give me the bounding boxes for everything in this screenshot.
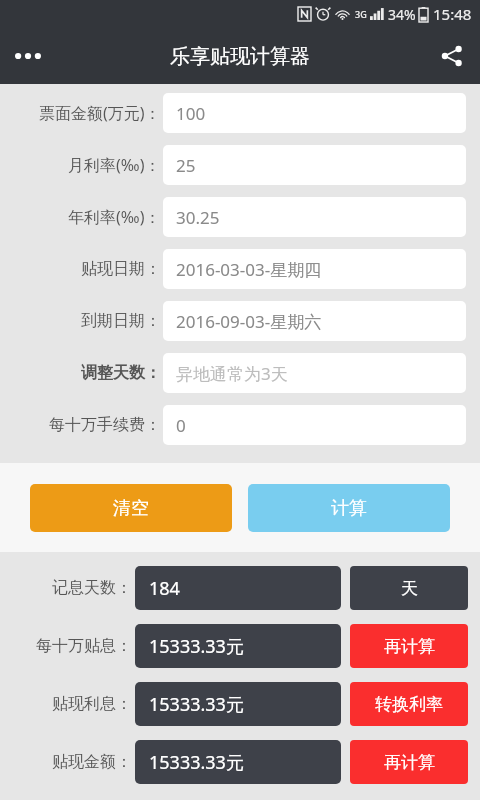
button[interactable]: 15333.33元 [135, 682, 341, 726]
staticText: 2016-09-03-星期六 [176, 310, 322, 333]
staticText: 每十万手续费： [49, 415, 161, 435]
staticText: 贴现利息： [52, 694, 132, 714]
staticText: 34% [388, 5, 416, 24]
staticText: 贴现日期： [81, 259, 161, 279]
button[interactable]: 再计算 [350, 624, 468, 668]
button[interactable]: 2016-03-03-星期四 [163, 249, 466, 289]
button[interactable]: 计算 [248, 484, 450, 532]
staticText: 再计算 [384, 636, 435, 657]
staticText: 15333.33元 [149, 750, 244, 775]
staticText: 贴现金额： [52, 752, 132, 772]
staticText: 再计算 [384, 752, 435, 773]
button[interactable]: 184 [135, 566, 341, 610]
button[interactable]: Share [424, 28, 480, 84]
button[interactable]: More options [0, 28, 56, 84]
staticText: 年利率(‰)： [68, 206, 161, 228]
staticText: 15333.33元 [149, 692, 244, 717]
staticText: 清空 [113, 497, 149, 520]
button[interactable]: 0 [163, 405, 466, 445]
button[interactable]: 转换利率 [350, 682, 468, 726]
staticText: 票面金额(万元)： [39, 102, 161, 124]
staticText: 2016-03-03-星期四 [176, 258, 322, 281]
staticText: 计算 [331, 497, 367, 520]
staticText: 每十万贴息： [36, 636, 132, 656]
button[interactable]: 15333.33元 [135, 624, 341, 668]
button[interactable]: 30.25 [163, 197, 466, 237]
button[interactable]: 再计算 [350, 740, 468, 784]
staticText: 0 [176, 414, 186, 437]
staticText: 调整天数： [81, 363, 161, 383]
button[interactable]: 2016-09-03-星期六 [163, 301, 466, 341]
staticText: 25 [176, 154, 196, 177]
button[interactable]: 100 [163, 93, 466, 133]
staticText: 184 [149, 576, 180, 601]
button[interactable]: 天 [350, 566, 468, 610]
staticText: 记息天数： [52, 578, 132, 598]
staticText: 异地通常为3天 [176, 362, 288, 385]
staticText: 100 [176, 102, 206, 125]
staticText: 月利率(‰)： [68, 154, 161, 176]
button[interactable]: 25 [163, 145, 466, 185]
staticText: 到期日期： [81, 311, 161, 331]
staticText: 乐享贴现计算器 [170, 44, 310, 69]
staticText: 15333.33元 [149, 634, 244, 659]
button[interactable]: 清空 [30, 484, 232, 532]
button[interactable]: 异地通常为3天 [163, 353, 466, 393]
staticText: 15:48 [433, 4, 472, 24]
staticText: 30.25 [176, 206, 220, 229]
staticText: 天 [401, 578, 418, 599]
button[interactable]: 15333.33元 [135, 740, 341, 784]
staticText: 3G [355, 8, 367, 20]
staticText: 转换利率 [375, 694, 443, 715]
